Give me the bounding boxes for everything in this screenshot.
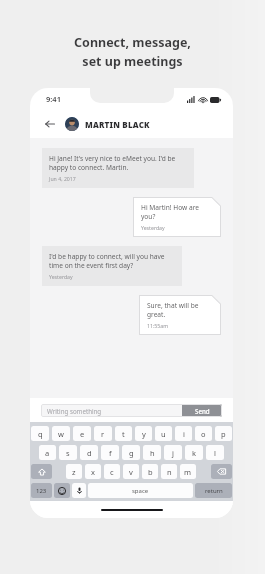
staticText: t: [122, 429, 125, 439]
button[interactable]: return: [195, 483, 232, 498]
staticText: q: [38, 429, 43, 439]
button[interactable]: Hi Jane! It's very nice to eMeet you. I'…: [42, 148, 194, 188]
button[interactable]: I'd be happy to connect, will you have: [42, 246, 182, 286]
staticText: l: [214, 448, 216, 458]
staticText: Connect, message,: [74, 34, 191, 51]
staticText: f: [109, 448, 112, 458]
button[interactable]: t: [115, 426, 132, 441]
button[interactable]: Martin Black avatar: [65, 117, 79, 131]
button[interactable]: y: [135, 426, 152, 441]
staticText: Send: [195, 407, 210, 415]
button[interactable]: q: [31, 426, 49, 441]
staticText: set up meetings: [82, 53, 183, 70]
button[interactable]: z: [66, 464, 82, 479]
staticText: Hi Jane! It's very nice to eMeet you. I'…: [49, 154, 176, 163]
staticText: Jun 4, 2017: [49, 175, 76, 182]
staticText: j: [172, 448, 174, 458]
staticText: z: [72, 467, 76, 477]
button[interactable]: g: [122, 445, 140, 460]
button[interactable]: Sure, that will be great.: [139, 295, 221, 335]
button[interactable]: c: [104, 464, 120, 479]
staticText: a: [45, 448, 50, 458]
button[interactable]: x: [85, 464, 101, 479]
button[interactable]: p: [215, 426, 232, 441]
button[interactable]: l: [206, 445, 224, 460]
staticText: Hi Martin! How are you?: [141, 203, 214, 221]
staticText: Yesterday: [141, 224, 165, 231]
button[interactable]: n: [161, 464, 177, 479]
button[interactable]: Shift: [31, 464, 52, 479]
button[interactable]: o: [195, 426, 212, 441]
staticText: I'd be happy to connect, will you have: [49, 252, 165, 261]
staticText: y: [142, 429, 146, 439]
button[interactable]: Back: [42, 116, 58, 132]
button[interactable]: MARTIN BLACK: [85, 119, 150, 130]
staticText: p: [221, 429, 226, 439]
staticText: 9:41: [46, 94, 61, 104]
staticText: Sure, that will be great.: [147, 301, 214, 319]
staticText: 11:55am: [147, 322, 169, 329]
button[interactable]: f: [101, 445, 119, 460]
staticText: d: [87, 448, 92, 458]
staticText: Yesterday: [49, 273, 73, 280]
button[interactable]: 123: [31, 483, 52, 498]
button[interactable]: w: [52, 426, 70, 441]
button[interactable]: Backspace: [211, 464, 232, 479]
button[interactable]: h: [143, 445, 161, 460]
staticText: m: [184, 467, 192, 477]
staticText: k: [192, 448, 197, 458]
staticText: s: [66, 448, 70, 458]
staticText: time on the event first day?: [49, 261, 134, 270]
staticText: i: [183, 429, 185, 439]
button[interactable]: k: [185, 445, 203, 460]
staticText: c: [110, 467, 114, 477]
staticText: o: [201, 429, 206, 439]
button[interactable]: Hi Martin! How are you?: [133, 197, 221, 237]
staticText: w: [58, 429, 64, 439]
staticText: v: [129, 467, 133, 477]
button[interactable]: a: [39, 445, 56, 460]
button[interactable]: Send: [182, 404, 222, 417]
button[interactable]: s: [59, 445, 77, 460]
staticText: Writing something: [47, 407, 102, 415]
button[interactable]: m: [180, 464, 196, 479]
button[interactable]: space: [88, 483, 193, 498]
staticText: happy to connect. Martin.: [49, 163, 129, 172]
staticText: r: [101, 429, 105, 439]
button[interactable]: d: [80, 445, 98, 460]
staticText: n: [167, 467, 172, 477]
staticText: e: [80, 429, 85, 439]
staticText: 123: [36, 487, 47, 495]
button[interactable]: v: [123, 464, 139, 479]
staticText: space: [132, 487, 149, 495]
button[interactable]: Voice input: [72, 483, 86, 498]
button[interactable]: b: [142, 464, 158, 479]
button[interactable]: r: [94, 426, 112, 441]
staticText: b: [148, 467, 153, 477]
button[interactable]: Writing something: [41, 404, 182, 417]
staticText: h: [150, 448, 155, 458]
button[interactable]: i: [175, 426, 192, 441]
staticText: u: [161, 429, 166, 439]
staticText: x: [91, 467, 95, 477]
button[interactable]: j: [164, 445, 182, 460]
staticText: g: [129, 448, 134, 458]
button[interactable]: e: [73, 426, 91, 441]
button[interactable]: Emoji: [54, 483, 70, 498]
button[interactable]: u: [155, 426, 172, 441]
staticText: return: [205, 487, 223, 495]
